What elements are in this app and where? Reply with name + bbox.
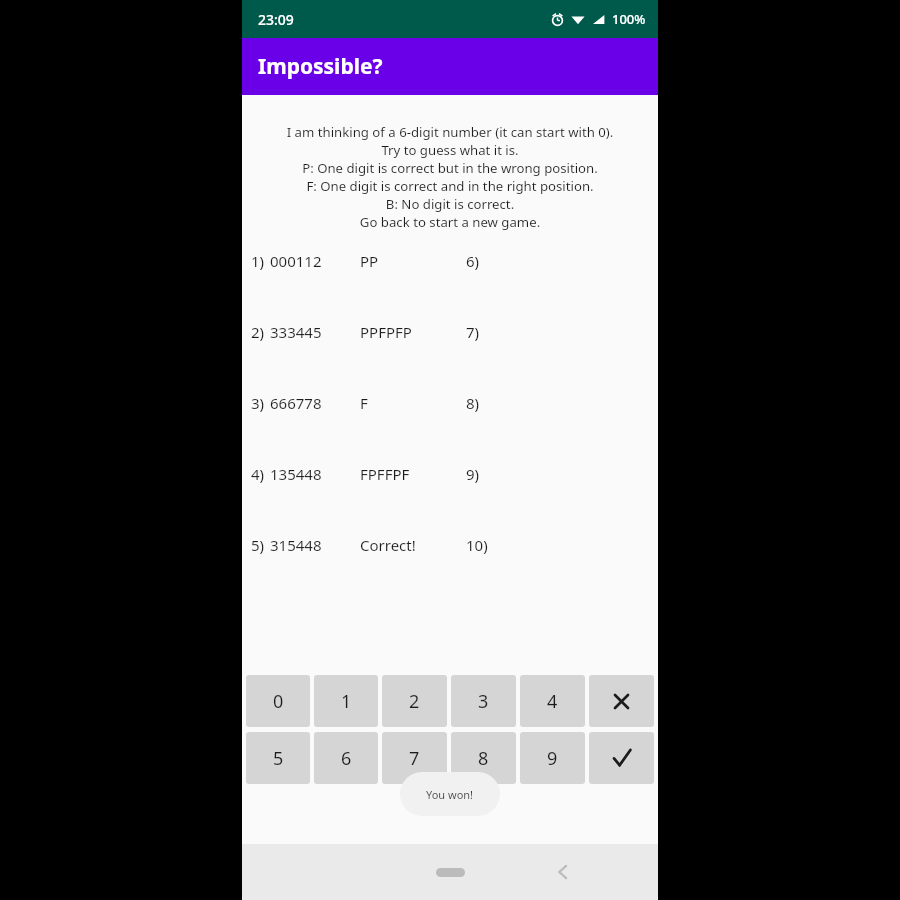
staticText: B: No digit is correct. [250,195,650,213]
staticText: 23:09 [258,10,294,29]
button[interactable]: 1) [251,251,658,322]
staticText: 1) [251,251,270,271]
staticText: Correct! [360,535,466,555]
staticText: 8 [478,746,489,771]
staticText: Try to guess what it is. [250,141,650,159]
button[interactable]: Back [546,855,580,889]
staticText: 333445 [270,322,360,342]
button[interactable]: 2 [382,675,447,727]
staticText: 1 [341,689,352,714]
staticText: I am thinking of a 6-digit number (it ca… [250,123,650,141]
staticText: 000112 [270,251,360,271]
staticText: F [360,393,466,413]
staticText: PPFPFP [360,322,466,342]
staticText: P: One digit is correct but in the wrong… [250,159,650,177]
button[interactable]: 9 [520,732,585,784]
staticText: FPFFPF [360,464,466,484]
staticText: 7) [466,322,480,342]
staticText: 4 [547,689,558,714]
staticText: 9 [547,746,558,771]
staticText: You won! [426,787,474,802]
staticText: 2 [409,689,420,714]
button[interactable]: 5 [246,732,310,784]
button[interactable]: 3) [251,393,658,464]
staticText: 8) [466,393,480,413]
button[interactable]: Submit guess [589,732,654,784]
staticText: 5 [273,746,284,771]
button[interactable]: 6 [314,732,378,784]
staticText: 100% [612,10,646,28]
staticText: 4) [251,464,270,484]
staticText: 7 [409,746,420,771]
button[interactable]: 4 [520,675,585,727]
staticText: 3) [251,393,270,413]
staticText: 5) [251,535,270,555]
staticText: Impossible? [258,52,383,81]
staticText: 666778 [270,393,360,413]
staticText: 9) [466,464,480,484]
button[interactable]: 8 [451,732,516,784]
button[interactable]: 3 [451,675,516,727]
button[interactable]: 5) [251,535,658,606]
staticText: 3 [478,689,489,714]
button[interactable]: 7 [382,732,447,784]
button[interactable]: Home [436,868,465,877]
button[interactable]: 0 [246,675,310,727]
button[interactable]: Delete [589,675,654,727]
button[interactable]: 2) [251,322,658,393]
staticText: Go back to start a new game. [250,213,650,231]
staticText: 10) [466,535,488,555]
staticText: 315448 [270,535,360,555]
button[interactable]: Impossible? [242,38,658,95]
staticText: 6 [341,746,352,771]
staticText: F: One digit is correct and in the right… [250,177,650,195]
staticText: 0 [273,689,284,714]
button[interactable]: 1 [314,675,378,727]
staticText: 135448 [270,464,360,484]
button[interactable]: 4) [251,464,658,535]
staticText: 2) [251,322,270,342]
staticText: PP [360,251,466,271]
staticText: 6) [466,251,480,271]
